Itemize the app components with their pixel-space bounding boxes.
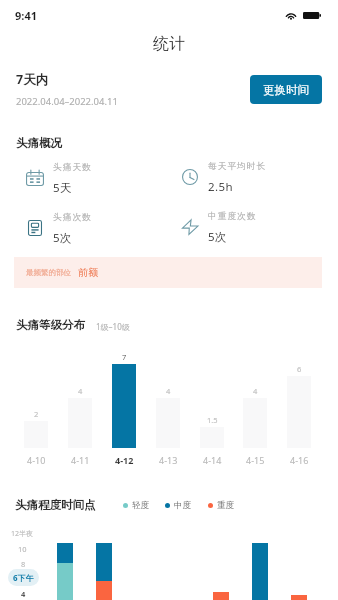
button[interactable]: 4-13 — [146, 350, 190, 466]
button[interactable]: 4-11 — [58, 350, 102, 466]
staticText: 每天平均时长 — [208, 161, 267, 172]
button[interactable]: 4-14 — [190, 350, 234, 466]
staticText: 2022.04.04–2022.04.11 — [16, 95, 118, 108]
button[interactable]: 4-12 — [102, 350, 146, 466]
staticText: 9:41 — [15, 8, 37, 23]
button[interactable]: 轻度 — [123, 500, 149, 511]
staticText: 4-10 — [27, 454, 46, 466]
staticText: 4 — [166, 386, 171, 396]
staticText: 8 — [21, 559, 26, 569]
staticText: 1级–10级 — [96, 321, 130, 332]
staticText: 前额 — [78, 266, 98, 279]
staticText: 4-11 — [71, 454, 90, 466]
staticText: 4-12 — [115, 454, 134, 466]
staticText: 更换时间 — [263, 83, 309, 97]
staticText: 4-15 — [246, 454, 265, 466]
staticText: 2.5h — [208, 179, 233, 195]
staticText: 轻度 — [132, 500, 149, 511]
button[interactable]: 重度 — [208, 500, 234, 511]
staticText: 5天 — [53, 180, 72, 196]
staticText: 5次 — [53, 230, 72, 246]
staticText: 6 — [297, 364, 302, 374]
staticText: 7 — [122, 352, 127, 362]
staticText: 重度 — [217, 500, 234, 511]
staticText: 4 — [253, 386, 258, 396]
button[interactable]: 4-10 — [14, 350, 58, 466]
staticText: 12半夜 — [11, 529, 34, 539]
staticText: 最频繁的部位 — [26, 268, 71, 277]
staticText: 7天内 — [16, 71, 49, 88]
staticText: 中重度次数 — [208, 211, 257, 222]
staticText: 头痛概况 — [16, 136, 62, 150]
staticText: 4 — [21, 589, 26, 599]
staticText: 1.5 — [207, 415, 218, 425]
staticText: 2 — [34, 409, 39, 419]
staticText: 头痛程度时间点 — [15, 498, 96, 512]
button[interactable]: 4-15 — [234, 350, 278, 466]
staticText: 中度 — [174, 500, 191, 511]
staticText: 4-13 — [159, 454, 178, 466]
button[interactable]: 更换时间 — [250, 75, 322, 104]
button[interactable]: 4-16 — [277, 350, 321, 466]
staticText: 4-16 — [290, 454, 309, 466]
staticText: 头痛次数 — [53, 212, 92, 223]
button[interactable]: 中度 — [165, 500, 191, 511]
staticText: 5次 — [208, 229, 227, 245]
staticText: 4-14 — [203, 454, 222, 466]
button[interactable]: 6下午 — [8, 569, 39, 586]
staticText: 10 — [18, 544, 27, 554]
staticText: 头痛等级分布 — [16, 318, 85, 332]
staticText: 统计 — [153, 34, 185, 54]
staticText: 4 — [78, 386, 83, 396]
staticText: 6下午 — [13, 572, 34, 583]
staticText: 头痛天数 — [53, 162, 92, 173]
